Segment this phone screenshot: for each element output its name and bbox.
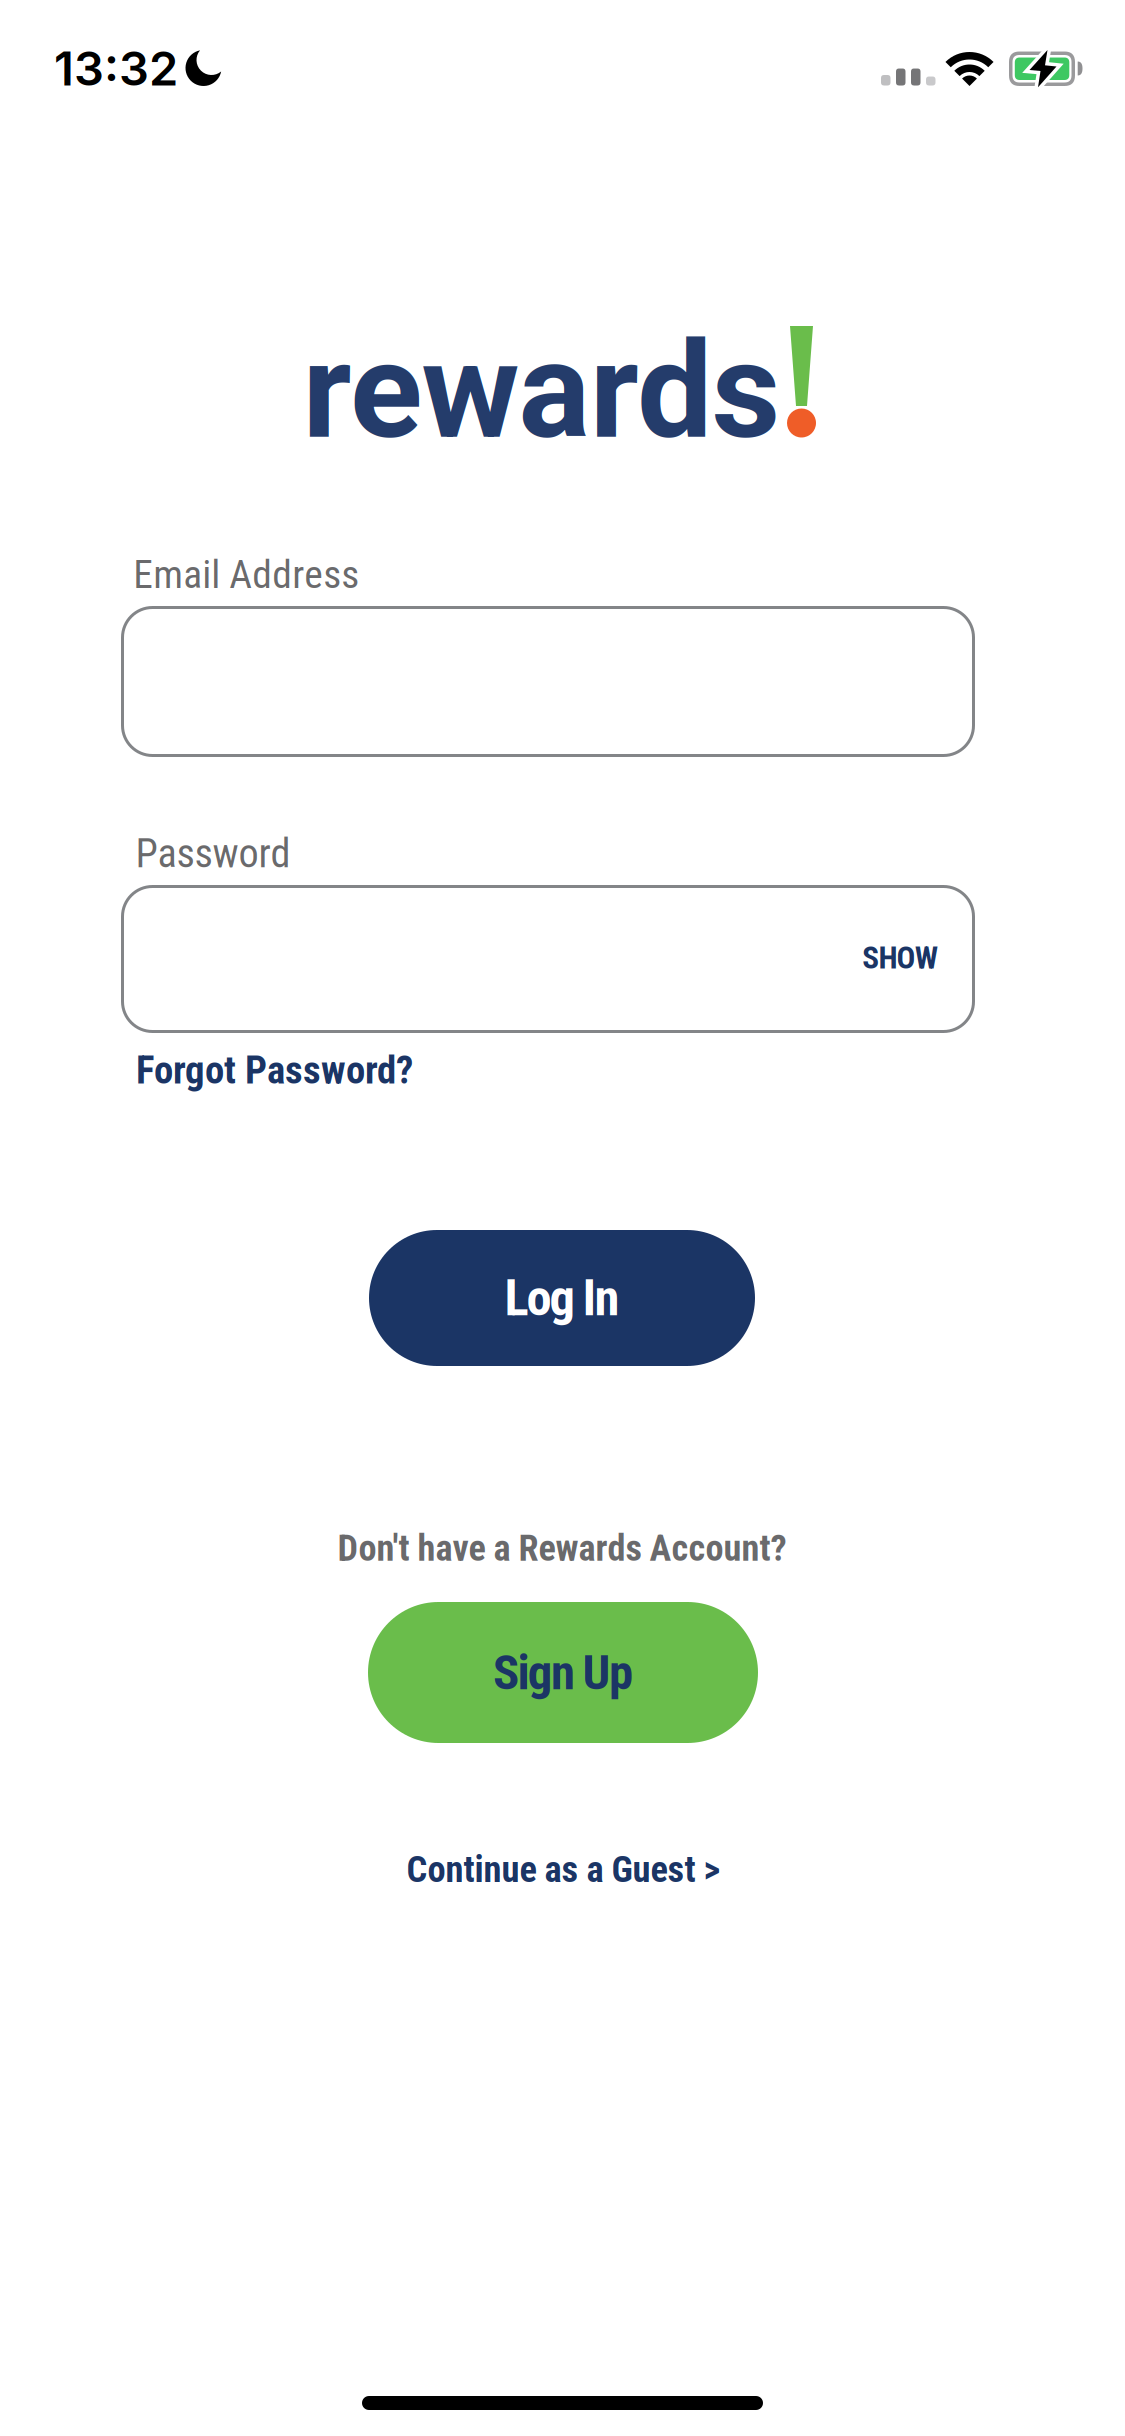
button[interactable]: Sign Up bbox=[368, 1602, 758, 1743]
button[interactable]: Log In bbox=[369, 1230, 755, 1366]
staticText: rewards bbox=[303, 312, 780, 469]
button[interactable]: Forgot Password? bbox=[136, 1048, 413, 1093]
staticText: Continue as a Guest > bbox=[406, 1848, 720, 1891]
staticText: Don't have a Rewards Account? bbox=[337, 1527, 786, 1569]
staticText: Forgot Password? bbox=[136, 1048, 413, 1093]
staticText: SHOW bbox=[862, 939, 938, 976]
staticText: 13:32 bbox=[54, 40, 178, 97]
staticText: Log In bbox=[504, 1268, 619, 1328]
staticText: Password bbox=[135, 830, 290, 877]
button[interactable]: SHOW bbox=[862, 939, 938, 976]
staticText: Email Address bbox=[133, 551, 359, 598]
button[interactable]: Continue as a Guest > bbox=[406, 1848, 720, 1891]
button[interactable]: Email Address bbox=[121, 606, 975, 757]
staticText: Sign Up bbox=[493, 1644, 633, 1701]
button[interactable]: Password bbox=[121, 885, 975, 1033]
